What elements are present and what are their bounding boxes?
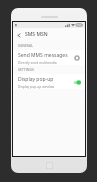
staticText: Display pop-up window <box>18 76 72 83</box>
button[interactable]: Send MMS messages <box>13 50 85 65</box>
staticText: GENERAL <box>18 43 34 48</box>
other: Configure <box>72 53 81 62</box>
button[interactable]: Navigate up <box>13 29 25 41</box>
staticText: Display pop-up window <box>18 84 55 88</box>
button[interactable]: Display pop-up window toggle <box>72 78 81 86</box>
staticText: SMS MSN <box>25 31 48 38</box>
staticText: SETTINGS <box>18 67 34 72</box>
staticText: Directly send multimedia messages <box>18 60 72 64</box>
button[interactable]: Display pop-up window <box>13 74 85 89</box>
staticText: Send MMS messages <box>18 52 68 59</box>
